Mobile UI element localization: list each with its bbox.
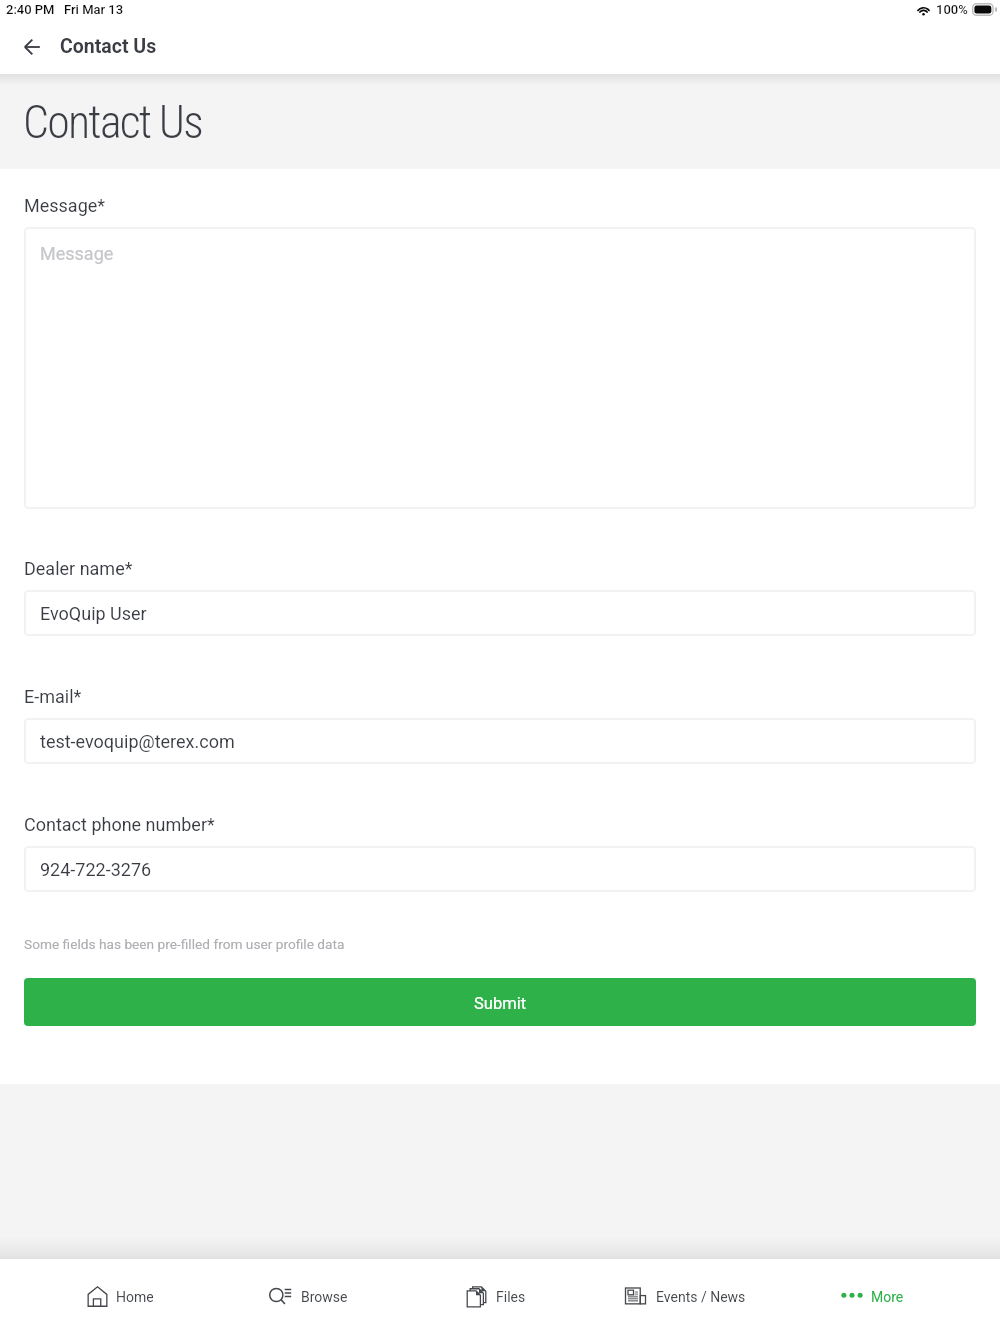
button[interactable]: 924-722-3276 — [24, 846, 976, 892]
button[interactable]: Events / News — [590, 1259, 778, 1334]
staticText: EvoQuip User — [40, 603, 147, 624]
staticText: Fri Mar 13 — [64, 2, 124, 17]
staticText: test-evoquip@terex.com — [40, 731, 235, 752]
button[interactable]: Back — [9, 27, 54, 72]
staticText: 100% — [936, 2, 968, 17]
staticText: Home — [116, 1289, 154, 1305]
button[interactable]: Submit — [24, 978, 976, 1026]
staticText: More — [871, 1289, 904, 1305]
staticText: Events / News — [656, 1289, 746, 1305]
staticText: Message — [40, 243, 114, 264]
staticText: 924-722-3276 — [40, 859, 152, 880]
staticText: Submit — [474, 994, 527, 1013]
staticText: Contact Us — [60, 35, 157, 58]
button[interactable]: Files — [402, 1259, 590, 1334]
button[interactable]: More — [778, 1259, 966, 1334]
staticText: Files — [496, 1289, 526, 1305]
staticText: Contact Us — [23, 95, 203, 149]
button[interactable]: Browse — [214, 1259, 402, 1334]
staticText: 2:40 PM — [6, 2, 55, 17]
staticText: Some fields has been pre-filled from use… — [24, 936, 345, 952]
staticText: E-mail* — [24, 686, 82, 707]
staticText: Browse — [301, 1289, 348, 1305]
staticText: Message* — [24, 195, 106, 216]
button[interactable]: Home — [26, 1259, 214, 1334]
staticText: Dealer name* — [24, 558, 133, 579]
button[interactable]: test-evoquip@terex.com — [24, 718, 976, 764]
staticText: Contact phone number* — [24, 814, 215, 835]
button[interactable]: EvoQuip User — [24, 590, 976, 636]
